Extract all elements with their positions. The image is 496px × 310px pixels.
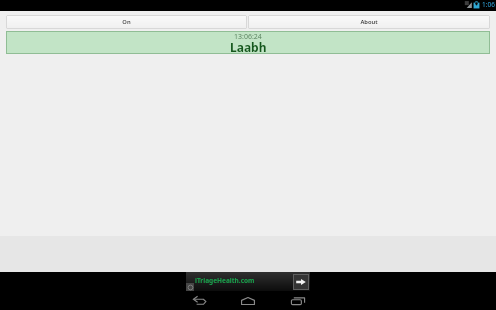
button[interactable]: About	[248, 15, 490, 29]
button[interactable]: Back	[180, 291, 218, 310]
button[interactable]: Home	[229, 291, 267, 310]
staticText: 1:06	[482, 0, 495, 9]
staticText: About	[360, 18, 378, 26]
staticText: iTriageHealth.com	[195, 276, 255, 285]
button[interactable]: Recent apps	[279, 291, 317, 310]
button[interactable]: On	[6, 15, 247, 29]
button[interactable]: iTriageHealth.com	[186, 272, 310, 292]
staticText: 13:06:24	[234, 32, 262, 42]
staticText: On	[122, 18, 131, 26]
staticText: Laabh	[230, 39, 267, 55]
button[interactable]: 13:06:24	[6, 31, 490, 54]
button[interactable]: Open advertisement	[293, 274, 309, 290]
